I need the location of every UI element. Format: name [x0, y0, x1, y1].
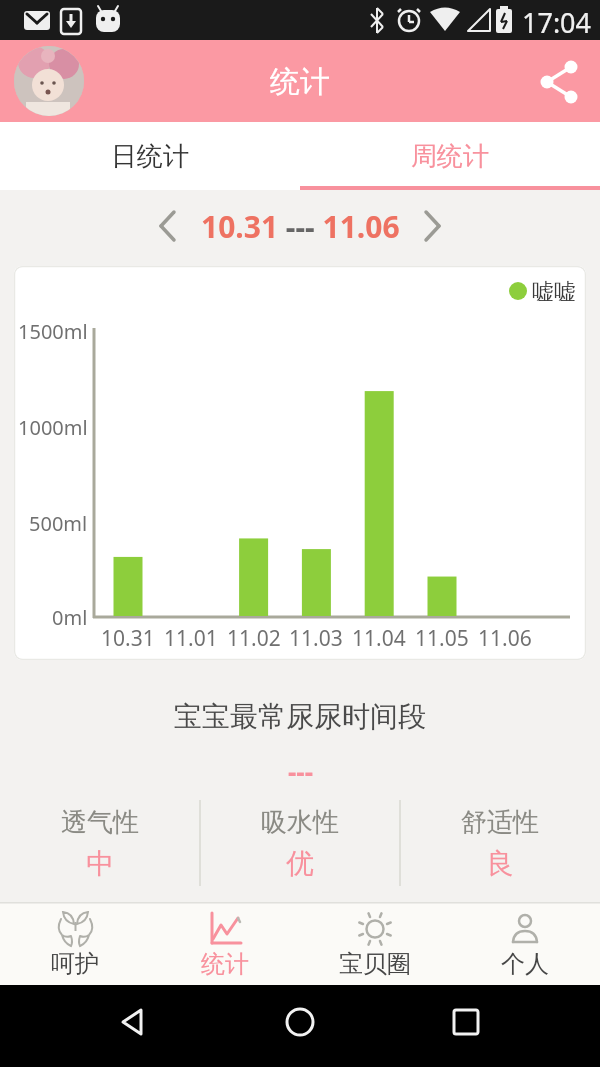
staticText: 宝宝最常尿尿时间段	[174, 699, 426, 734]
staticText: 良	[486, 846, 514, 880]
button[interactable]: 日统计	[0, 122, 300, 190]
staticText: 11.05	[415, 624, 469, 652]
button[interactable]	[443, 999, 489, 1045]
button[interactable]	[14, 46, 84, 116]
staticText: 吸水性	[261, 806, 339, 838]
button[interactable]: 统计	[150, 902, 300, 985]
staticText: 日统计	[111, 140, 189, 173]
staticText: 呵护	[51, 949, 99, 979]
staticText: ---	[288, 754, 313, 784]
staticText: 嘘嘘	[532, 278, 576, 306]
staticText: 10.31	[101, 624, 155, 652]
staticText: 中	[86, 846, 114, 880]
staticText: 统计	[201, 949, 249, 979]
staticText: 个人	[501, 949, 549, 979]
button[interactable]: 透气性	[0, 800, 200, 888]
staticText: 11.06	[478, 624, 532, 652]
staticText: 11.03	[289, 624, 343, 652]
staticText: 10.31 --- 11.06	[201, 206, 400, 246]
staticText: 宝贝圈	[339, 949, 411, 979]
staticText: 17:04	[522, 4, 592, 36]
staticText: 透气性	[61, 806, 139, 838]
staticText: 统计	[270, 63, 330, 99]
staticText: 舒适性	[461, 806, 539, 838]
button[interactable]	[110, 999, 156, 1045]
staticText: 0ml	[52, 604, 88, 631]
button[interactable]: 舒适性	[400, 800, 600, 888]
staticText: 1500ml	[18, 318, 88, 345]
staticText: 11.01	[164, 624, 218, 652]
button[interactable]: 个人	[450, 902, 600, 985]
button[interactable]	[538, 59, 584, 105]
button[interactable]	[277, 999, 323, 1045]
button[interactable]: 宝贝圈	[300, 902, 450, 985]
staticText: 11.02	[227, 624, 281, 652]
button[interactable]: 周统计	[300, 122, 600, 190]
staticText: 11.04	[352, 624, 406, 652]
button[interactable]: 10.31 --- 11.06	[200, 206, 400, 246]
button[interactable]	[148, 206, 188, 246]
button[interactable]: 吸水性	[200, 800, 400, 888]
staticText: 优	[286, 846, 314, 880]
button[interactable]: 呵护	[0, 902, 150, 985]
staticText: 1000ml	[18, 414, 88, 441]
button[interactable]	[412, 206, 452, 246]
staticText: 周统计	[411, 140, 489, 173]
staticText: 500ml	[29, 510, 88, 537]
